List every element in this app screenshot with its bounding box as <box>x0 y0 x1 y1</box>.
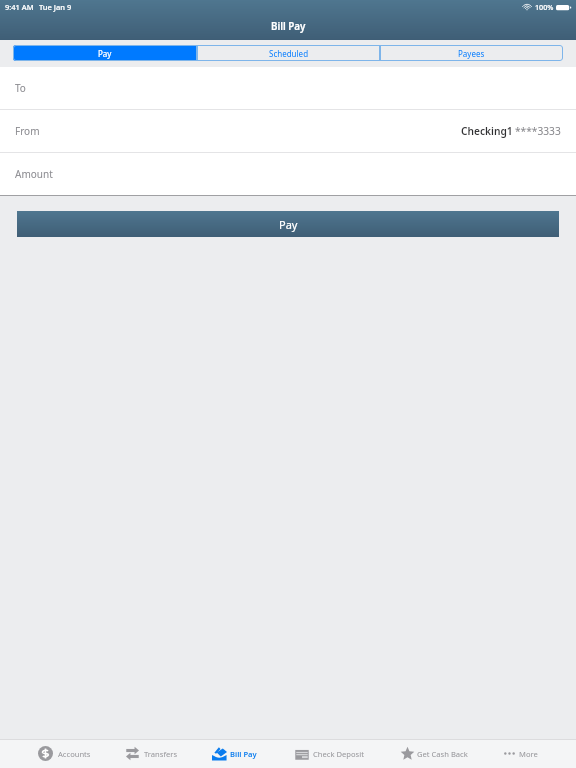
staticText: Get Cash Back <box>417 749 468 759</box>
staticText: 9:41 AM <box>5 2 34 12</box>
staticText: Payees <box>458 48 485 59</box>
staticText: Amount <box>15 167 53 181</box>
button[interactable]: Transfers <box>126 739 178 768</box>
button[interactable]: Scheduled <box>197 45 380 61</box>
staticText: From <box>15 124 40 138</box>
staticText: Tue Jan 9 <box>39 2 72 12</box>
button[interactable]: Bill Pay <box>212 739 257 768</box>
button[interactable]: Amount <box>0 153 576 195</box>
button[interactable]: Accounts <box>38 739 91 768</box>
staticText: Accounts <box>58 749 91 759</box>
button[interactable]: To <box>0 67 576 109</box>
button[interactable]: Check Deposit <box>295 739 364 768</box>
staticText: Checking1 <box>461 124 513 138</box>
staticText: Transfers <box>144 749 178 759</box>
button[interactable]: Pay <box>13 45 197 61</box>
staticText: Pay <box>98 48 112 59</box>
staticText: 100% <box>535 2 554 12</box>
button[interactable]: Payees <box>380 45 563 61</box>
staticText: Scheduled <box>269 48 309 59</box>
button[interactable]: Get Cash Back <box>401 739 468 768</box>
staticText: More <box>519 749 538 759</box>
button[interactable]: Pay <box>17 211 559 237</box>
button[interactable]: From <box>0 110 576 152</box>
staticText: ****3333 <box>515 124 561 138</box>
staticText: To <box>15 81 26 95</box>
staticText: Bill Pay <box>230 749 257 759</box>
staticText: Check Deposit <box>313 749 364 759</box>
staticText: Pay <box>279 217 298 232</box>
staticText: Bill Pay <box>271 20 306 33</box>
button[interactable]: More <box>503 739 538 768</box>
